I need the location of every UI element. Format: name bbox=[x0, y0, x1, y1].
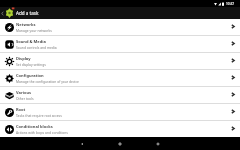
staticText: Configuration bbox=[16, 73, 44, 78]
staticText: Display bbox=[16, 56, 31, 61]
button[interactable]: Networks bbox=[0, 19, 240, 35]
button[interactable]: Root bbox=[0, 104, 240, 120]
staticText: Various bbox=[16, 90, 32, 95]
button[interactable]: Sound & Media bbox=[0, 36, 240, 52]
staticText: Conditional blocks bbox=[16, 124, 53, 129]
button[interactable]: Navigate up bbox=[0, 7, 5, 19]
button[interactable]: Recent apps bbox=[139, 137, 177, 150]
staticText: Networks bbox=[16, 22, 36, 27]
staticText: Manage your networks bbox=[16, 28, 52, 32]
button[interactable]: Configuration bbox=[0, 70, 240, 86]
staticText: Set display settings bbox=[16, 62, 46, 66]
button[interactable]: Conditional blocks bbox=[0, 121, 240, 137]
button[interactable]: Home bbox=[101, 137, 139, 150]
staticText: Actions with loops and conditions bbox=[16, 130, 68, 134]
staticText: Manage the configuration of your device bbox=[16, 79, 79, 83]
staticText: Tasks that require root access bbox=[16, 113, 62, 117]
staticText: Root bbox=[16, 107, 26, 112]
staticText: Sound controls and media bbox=[16, 45, 57, 49]
button[interactable]: Display bbox=[0, 53, 240, 69]
staticText: Sound & Media bbox=[16, 39, 46, 44]
staticText: 10:37 bbox=[226, 2, 235, 6]
staticText: Add a task bbox=[16, 10, 39, 16]
button[interactable]: Back bbox=[63, 137, 101, 150]
staticText: Other tools bbox=[16, 96, 34, 100]
button[interactable]: Various bbox=[0, 87, 240, 103]
